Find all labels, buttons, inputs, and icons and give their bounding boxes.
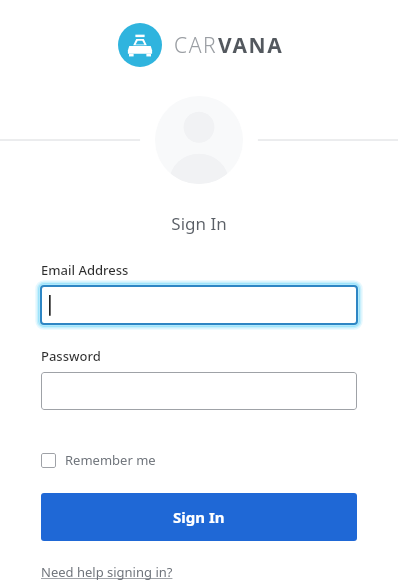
button[interactable]: Sign In xyxy=(41,493,357,541)
staticText: Email Address xyxy=(41,261,129,279)
staticText: Sign In xyxy=(173,507,225,527)
button[interactable] xyxy=(41,286,357,324)
staticText: Sign In xyxy=(0,212,398,235)
staticText: CAR xyxy=(174,31,218,60)
button[interactable]: Need help signing in? xyxy=(41,563,173,581)
staticText: Need help signing in? xyxy=(41,563,173,581)
staticText: VANA xyxy=(218,31,284,60)
button[interactable] xyxy=(41,372,357,410)
staticText: Password xyxy=(41,347,101,365)
staticText: Remember me xyxy=(65,451,156,469)
button[interactable]: Remember me xyxy=(41,449,156,471)
